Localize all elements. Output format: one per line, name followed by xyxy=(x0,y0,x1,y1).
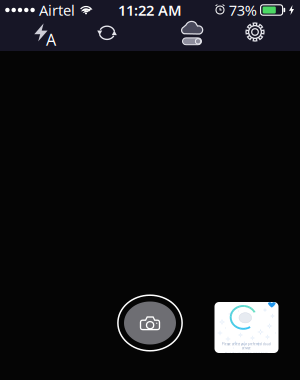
button[interactable]: Switch camera xyxy=(85,18,129,48)
staticText: Your choice will be saved here xyxy=(225,352,268,355)
button[interactable]: Take photo xyxy=(116,293,184,353)
button[interactable]: Last photo xyxy=(214,302,278,353)
staticText: Airtel xyxy=(39,0,75,20)
staticText: service xyxy=(242,346,251,350)
staticText: Please select your preferred cloud xyxy=(222,342,271,346)
button[interactable]: Cloud upload xyxy=(170,18,214,48)
staticText: 73% xyxy=(229,0,257,20)
staticText: A xyxy=(46,29,56,50)
staticText: 11:22 AM xyxy=(118,0,182,20)
button[interactable]: Settings xyxy=(233,17,277,47)
button[interactable]: Flash auto xyxy=(23,19,67,49)
